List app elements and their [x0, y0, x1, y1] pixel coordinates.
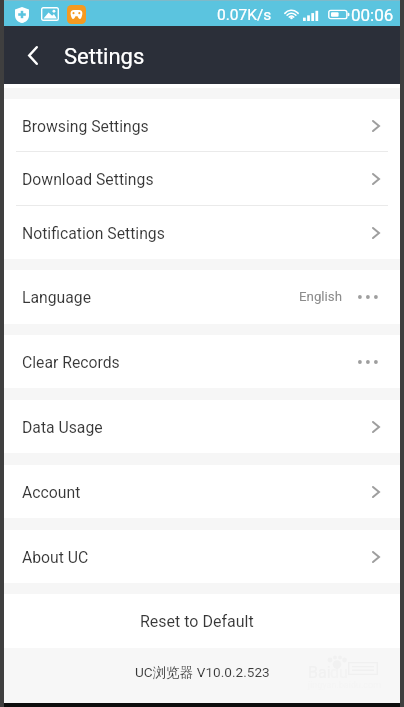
button[interactable]: About UC	[4, 530, 400, 583]
button[interactable]: Download Settings	[4, 152, 400, 206]
staticText: Language	[22, 288, 92, 306]
button[interactable]: Reset to Default	[4, 594, 400, 648]
staticText: About UC	[22, 548, 89, 566]
staticText: 0.07K/s	[217, 6, 272, 24]
staticText: Clear Records	[22, 353, 120, 371]
staticText: Notification Settings	[22, 224, 165, 242]
staticText: Data Usage	[22, 418, 103, 436]
button[interactable]: Notification Settings	[4, 206, 400, 259]
button[interactable]: Account	[4, 465, 400, 518]
staticText: UC浏览器 V10.0.2.523	[135, 664, 270, 681]
button[interactable]: Browsing Settings	[4, 99, 400, 152]
staticText: Settings	[64, 44, 145, 70]
button[interactable]: Language	[4, 270, 400, 324]
staticText: Account	[22, 483, 81, 501]
staticText: Reset to Default	[140, 612, 254, 631]
button[interactable]: Clear Records	[4, 335, 400, 388]
staticText: 00:06	[351, 5, 394, 25]
button[interactable]: Data Usage	[4, 400, 400, 453]
staticText: Browsing Settings	[22, 117, 149, 135]
staticText: English	[299, 289, 343, 305]
button[interactable]: Back	[4, 26, 60, 84]
staticText: Download Settings	[22, 170, 154, 188]
